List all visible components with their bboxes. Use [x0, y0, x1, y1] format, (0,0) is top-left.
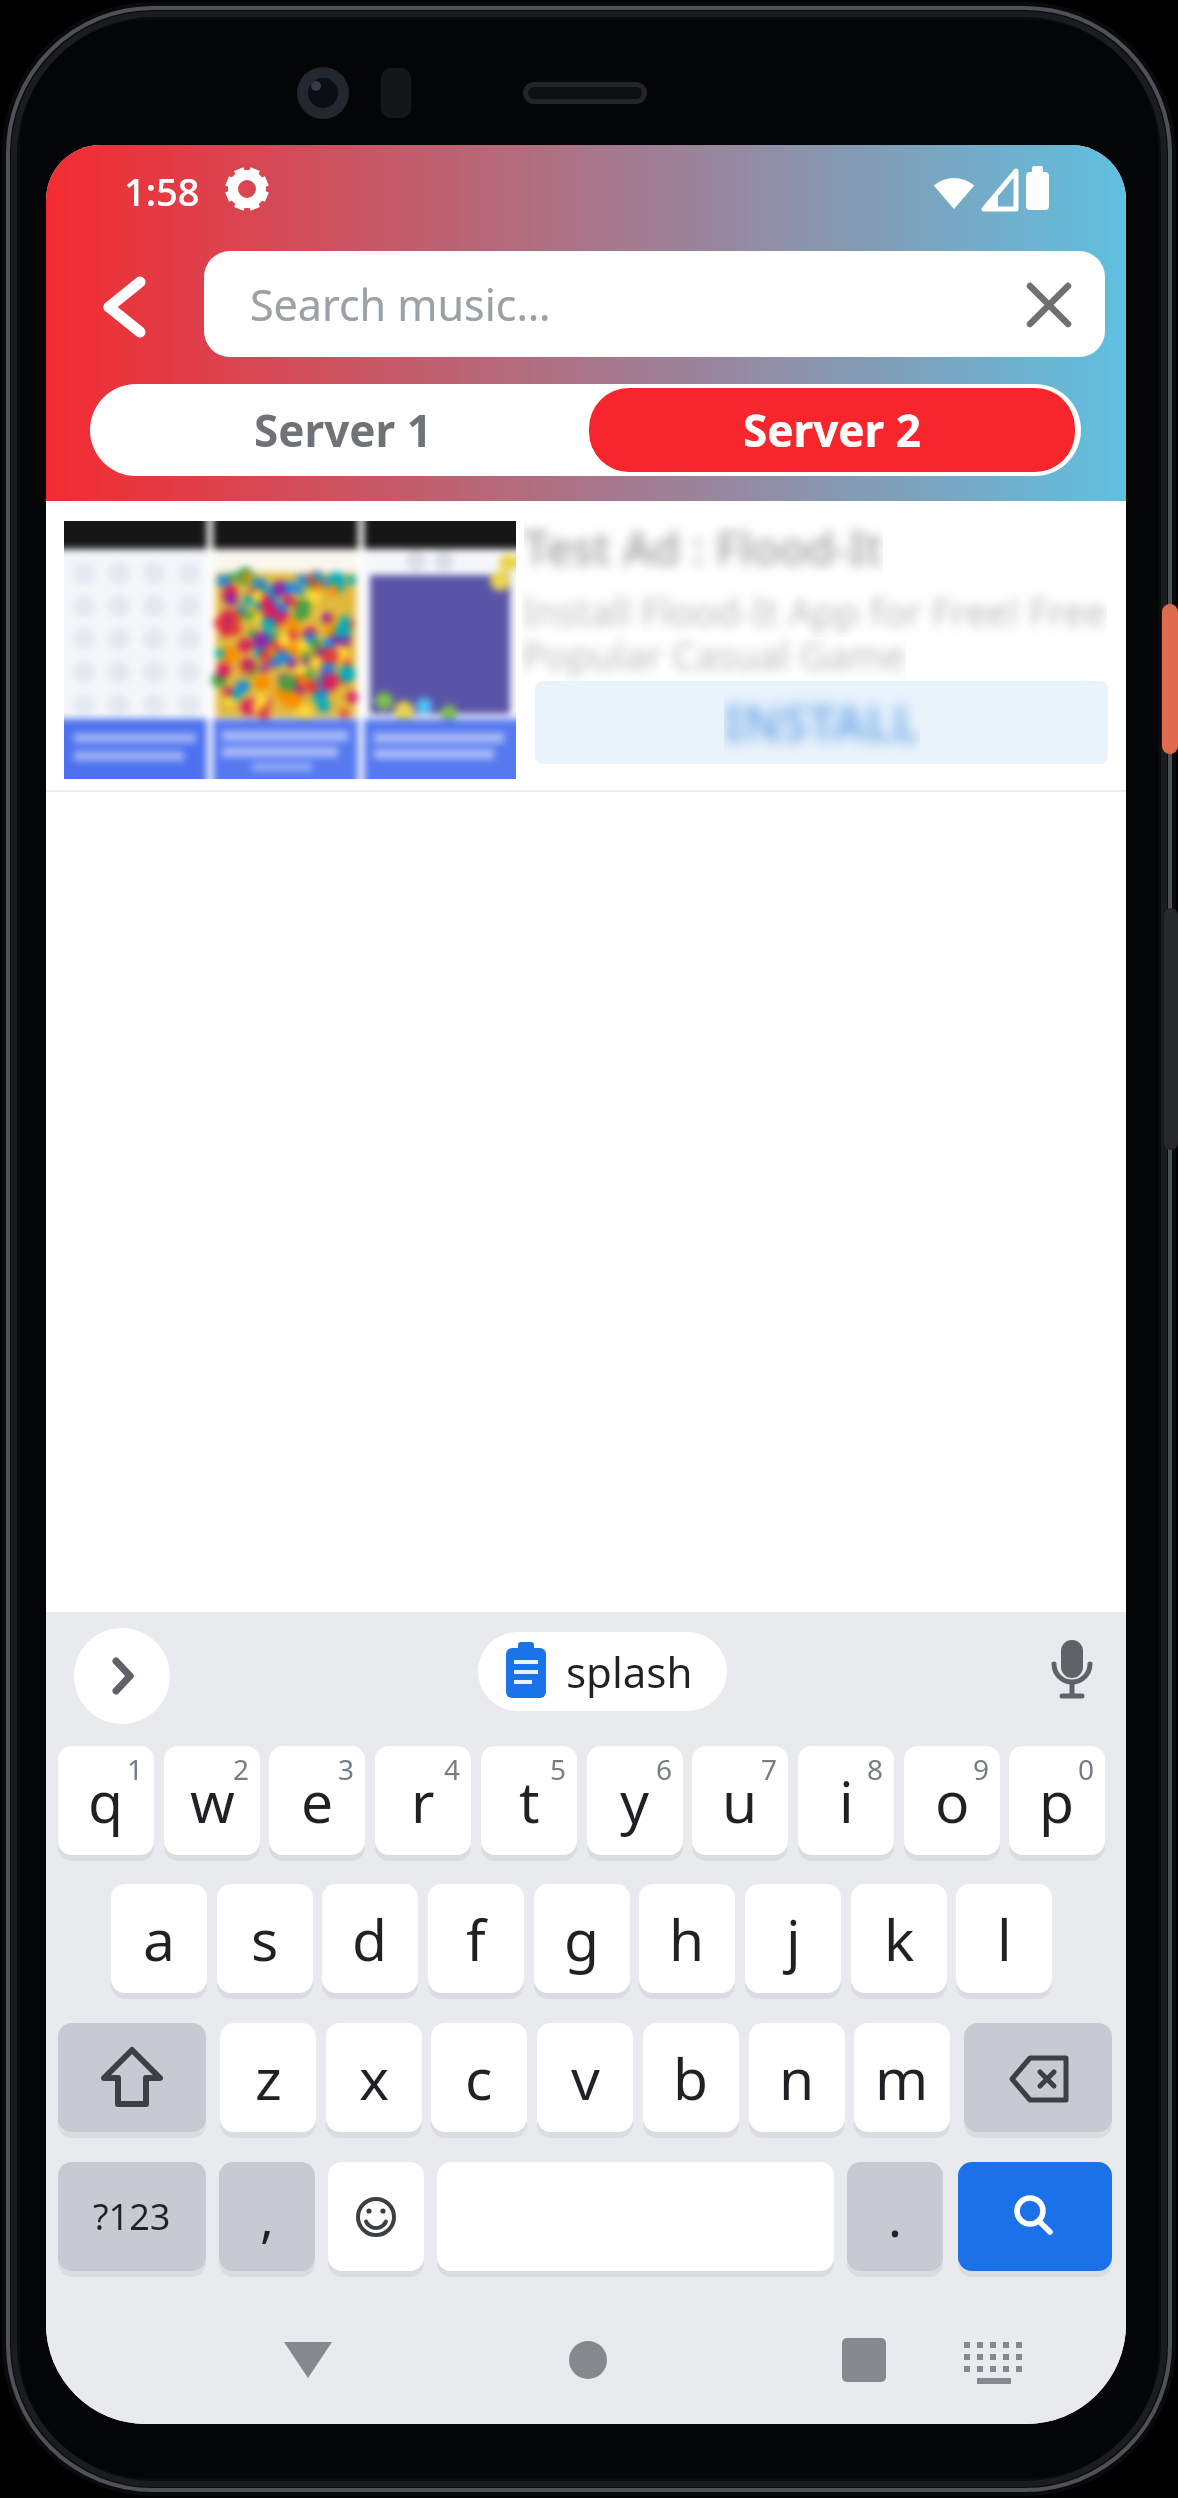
- button[interactable]: r: [375, 1746, 471, 1855]
- button[interactable]: n: [749, 2023, 845, 2132]
- staticText: 7: [761, 1750, 778, 1788]
- staticText: q: [88, 1762, 124, 1840]
- staticText: s: [251, 1900, 279, 1978]
- button[interactable]: j: [745, 1884, 841, 1993]
- staticText: splash: [566, 1643, 693, 1700]
- button[interactable]: [58, 2023, 206, 2132]
- staticText: p: [1039, 1762, 1075, 1840]
- staticText: Server 2: [743, 400, 921, 460]
- button[interactable]: [328, 2162, 424, 2271]
- staticText: 4: [444, 1750, 461, 1788]
- staticText: Server 1: [254, 400, 432, 460]
- button[interactable]: p: [1009, 1746, 1105, 1855]
- staticText: k: [884, 1900, 915, 1978]
- staticText: a: [143, 1900, 175, 1978]
- staticText: z: [255, 2039, 282, 2117]
- button[interactable]: k: [851, 1884, 947, 1993]
- button[interactable]: q: [58, 1746, 154, 1855]
- button[interactable]: y: [587, 1746, 683, 1855]
- button[interactable]: [564, 2336, 612, 2384]
- staticText: w: [190, 1762, 235, 1840]
- button[interactable]: o: [904, 1746, 1000, 1855]
- button[interactable]: Server 1: [90, 384, 595, 476]
- button[interactable]: t: [481, 1746, 577, 1855]
- button[interactable]: g: [534, 1884, 630, 1993]
- staticText: g: [564, 1900, 600, 1978]
- button[interactable]: [838, 2334, 890, 2386]
- button[interactable]: x: [326, 2023, 422, 2132]
- staticText: .: [888, 2181, 902, 2252]
- button[interactable]: [1046, 1638, 1098, 1708]
- staticText: Install Flood-It App for Free! Free: [522, 585, 1107, 637]
- button[interactable]: [272, 2330, 344, 2390]
- button[interactable]: l: [956, 1884, 1052, 1993]
- staticText: h: [669, 1900, 705, 1978]
- staticText: u: [722, 1762, 758, 1840]
- staticText: 0: [1078, 1750, 1095, 1788]
- button[interactable]: INSTALL: [535, 681, 1108, 764]
- button[interactable]: splash: [478, 1632, 727, 1711]
- button[interactable]: c: [431, 2023, 527, 2132]
- button[interactable]: m: [854, 2023, 950, 2132]
- button[interactable]: ?123: [58, 2162, 206, 2271]
- staticText: n: [779, 2039, 815, 2117]
- staticText: 3: [338, 1750, 355, 1788]
- button[interactable]: i: [798, 1746, 894, 1855]
- button[interactable]: f: [428, 1884, 524, 1993]
- button[interactable]: a: [111, 1884, 207, 1993]
- button[interactable]: w: [164, 1746, 260, 1855]
- button[interactable]: e: [269, 1746, 365, 1855]
- staticText: l: [997, 1900, 1012, 1978]
- button[interactable]: u: [692, 1746, 788, 1855]
- staticText: e: [301, 1762, 334, 1840]
- button[interactable]: h: [639, 1884, 735, 1993]
- staticText: ,: [260, 2181, 274, 2252]
- staticText: 1: [127, 1750, 144, 1788]
- button[interactable]: [958, 2338, 1030, 2390]
- staticText: 2: [233, 1750, 250, 1788]
- staticText: ?123: [93, 2192, 171, 2241]
- staticText: 1:58: [124, 165, 200, 217]
- staticText: f: [466, 1900, 486, 1978]
- staticText: b: [673, 2039, 709, 2117]
- staticText: INSTALL: [724, 690, 920, 755]
- staticText: j: [786, 1900, 801, 1978]
- staticText: x: [359, 2039, 390, 2117]
- staticText: 6: [656, 1750, 673, 1788]
- staticText: t: [519, 1762, 540, 1840]
- staticText: c: [465, 2039, 493, 2117]
- staticText: y: [620, 1762, 650, 1840]
- staticText: m: [875, 2039, 929, 2117]
- button[interactable]: [958, 2162, 1112, 2271]
- staticText: o: [935, 1762, 970, 1840]
- button[interactable]: [74, 1628, 170, 1724]
- button[interactable]: b: [643, 2023, 739, 2132]
- button[interactable]: Search music…: [204, 251, 1105, 357]
- staticText: 9: [973, 1750, 990, 1788]
- button[interactable]: z: [220, 2023, 316, 2132]
- staticText: Test Ad : Flood-It: [524, 517, 883, 578]
- staticText: d: [352, 1900, 388, 1978]
- staticText: Search music…: [250, 275, 551, 334]
- button[interactable]: .: [847, 2162, 943, 2271]
- button[interactable]: s: [217, 1884, 313, 1993]
- staticText: Popular Casual Game: [522, 629, 906, 681]
- button[interactable]: [964, 2023, 1112, 2132]
- button[interactable]: Server 2: [589, 388, 1075, 472]
- staticText: v: [571, 2039, 600, 2117]
- button[interactable]: d: [322, 1884, 418, 1993]
- staticText: 5: [550, 1750, 567, 1788]
- staticText: r: [411, 1762, 435, 1840]
- button[interactable]: v: [537, 2023, 633, 2132]
- button[interactable]: ,: [219, 2162, 315, 2271]
- staticText: 8: [867, 1750, 884, 1788]
- staticText: i: [839, 1762, 854, 1840]
